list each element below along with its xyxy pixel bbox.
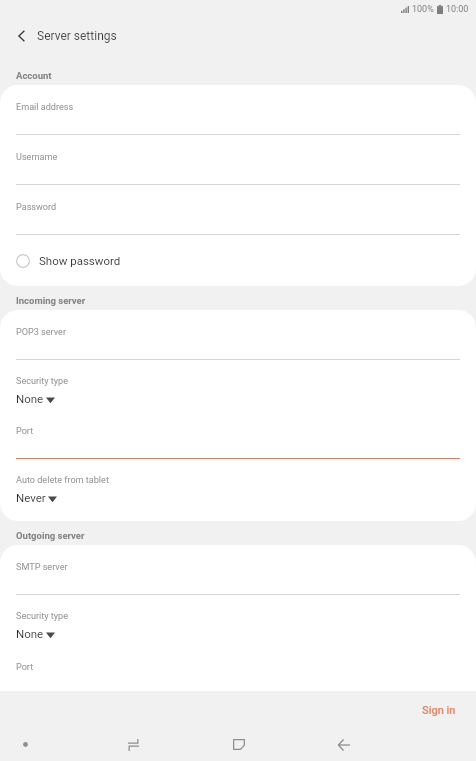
staticText: Email address: [16, 102, 74, 113]
button[interactable]: Port: [0, 645, 476, 691]
staticText: Incoming server: [16, 295, 86, 306]
button[interactable]: Back: [327, 728, 360, 761]
staticText: Username: [16, 152, 58, 163]
staticText: Security type: [16, 611, 69, 622]
staticText: Outgoing server: [16, 530, 85, 541]
button[interactable]: Auto delete from tablet: [0, 459, 476, 521]
staticText: Password: [16, 202, 57, 213]
button[interactable]: POP3 server: [0, 310, 476, 360]
button[interactable]: Home: [222, 728, 255, 761]
staticText: Server settings: [37, 29, 117, 43]
button[interactable]: Security type: [0, 595, 476, 645]
button[interactable]: Email address: [0, 85, 476, 135]
staticText: SMTP server: [16, 562, 68, 573]
button[interactable]: Show password: [0, 235, 476, 286]
staticText: Account: [16, 70, 52, 81]
button[interactable]: Password: [0, 185, 476, 235]
staticText: None: [16, 627, 44, 640]
staticText: None: [16, 392, 44, 405]
button[interactable]: Recent apps: [117, 728, 150, 761]
staticText: POP3 server: [16, 327, 67, 338]
staticText: Port: [16, 662, 34, 673]
button[interactable]: Sign in: [406, 695, 476, 726]
staticText: Never: [16, 491, 46, 504]
staticText: Sign in: [422, 704, 456, 717]
button[interactable]: Port: [0, 409, 476, 459]
button[interactable]: Username: [0, 135, 476, 185]
button[interactable]: Navigate up: [4, 19, 38, 53]
staticText: Port: [16, 426, 34, 437]
staticText: 10:00: [446, 4, 469, 15]
button[interactable]: Security type: [0, 360, 476, 409]
staticText: Show password: [39, 254, 121, 267]
button[interactable]: SMTP server: [0, 545, 476, 595]
staticText: Security type: [16, 376, 69, 387]
staticText: Auto delete from tablet: [16, 475, 109, 486]
staticText: 100%: [412, 4, 434, 15]
